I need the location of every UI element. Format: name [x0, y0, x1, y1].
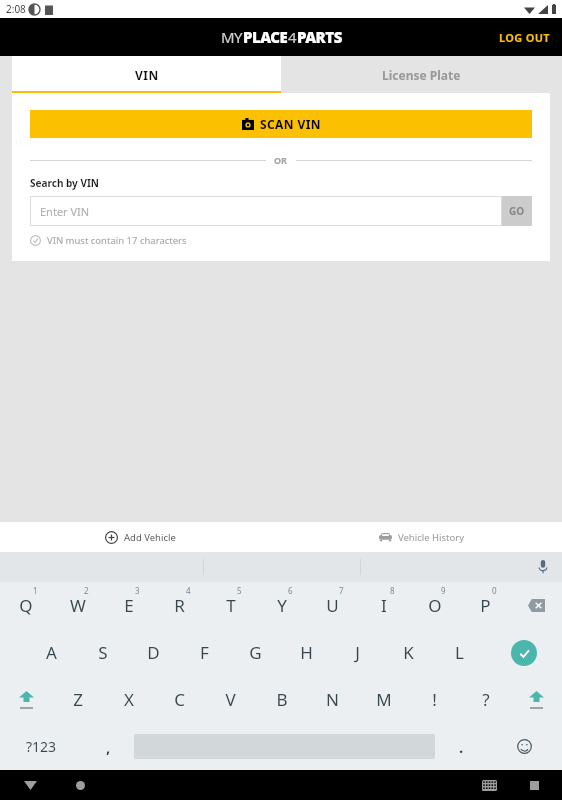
button[interactable]: LOG OUT: [487, 18, 562, 56]
button[interactable]: ?123: [0, 723, 82, 770]
button[interactable]: K: [383, 629, 434, 676]
staticText: S: [98, 641, 108, 664]
staticText: X: [124, 688, 134, 711]
button[interactable]: W: [52, 582, 103, 629]
button[interactable]: U: [307, 582, 358, 629]
staticText: B: [276, 688, 288, 711]
button[interactable]: Add Vehicle: [0, 522, 281, 552]
staticText: 2:08: [6, 2, 26, 16]
button[interactable]: License Plate: [281, 56, 562, 93]
staticText: A: [46, 641, 57, 664]
button[interactable]: ,: [82, 723, 134, 770]
staticText: Y: [277, 594, 287, 617]
button[interactable]: SCAN VIN: [30, 110, 532, 138]
staticText: 8: [390, 585, 395, 596]
staticText: 1: [33, 585, 38, 596]
staticText: F: [200, 641, 209, 664]
staticText: 4: [186, 585, 191, 596]
button[interactable]: M: [358, 676, 409, 723]
button[interactable]: R: [154, 582, 205, 629]
button[interactable]: Shift: [0, 676, 52, 723]
button[interactable]: H: [281, 629, 332, 676]
staticText: LOG OUT: [499, 30, 550, 45]
staticText: 4: [288, 27, 297, 47]
button[interactable]: Back: [20, 775, 40, 795]
staticText: L: [455, 641, 464, 664]
button[interactable]: V: [205, 676, 256, 723]
button[interactable]: Shift: [511, 676, 562, 723]
button[interactable]: GO: [502, 196, 532, 226]
button[interactable]: Home: [70, 775, 90, 795]
staticText: SCAN VIN: [260, 116, 321, 132]
staticText: Z: [73, 688, 83, 711]
staticText: V: [225, 688, 236, 711]
button[interactable]: L: [434, 629, 485, 676]
staticText: License Plate: [382, 67, 461, 83]
staticText: E: [124, 594, 134, 617]
staticText: 2: [84, 585, 89, 596]
button[interactable]: Recent apps: [524, 775, 544, 795]
button[interactable]: B: [256, 676, 307, 723]
staticText: PARTS: [297, 27, 342, 47]
button[interactable]: Q: [0, 582, 52, 629]
staticText: 6: [288, 585, 293, 596]
staticText: N: [326, 688, 339, 711]
button[interactable]: .: [435, 723, 487, 770]
staticText: C: [174, 688, 185, 711]
staticText: O: [428, 594, 442, 617]
button[interactable]: S: [77, 629, 128, 676]
staticText: J: [355, 641, 360, 664]
staticText: ?123: [26, 737, 57, 756]
button[interactable]: N: [307, 676, 358, 723]
button[interactable]: Vehicle History: [281, 522, 562, 552]
staticText: D: [147, 641, 160, 664]
staticText: PLACE: [243, 27, 288, 47]
staticText: I: [381, 594, 387, 617]
button[interactable]: T: [205, 582, 256, 629]
staticText: GO: [509, 204, 525, 218]
staticText: R: [174, 594, 185, 617]
staticText: 5: [237, 585, 242, 596]
staticText: Search by VIN: [30, 176, 99, 190]
button[interactable]: Backspace: [511, 582, 562, 629]
button[interactable]: Z: [52, 676, 103, 723]
staticText: ,: [106, 737, 111, 757]
button[interactable]: Y: [256, 582, 307, 629]
button[interactable]: Voice input: [534, 558, 552, 576]
staticText: W: [70, 594, 86, 617]
staticText: M: [376, 688, 392, 711]
button[interactable]: VIN: [12, 56, 281, 93]
button[interactable]: I: [358, 582, 409, 629]
staticText: Add Vehicle: [124, 531, 176, 544]
button[interactable]: J: [332, 629, 383, 676]
button[interactable]: E: [103, 582, 154, 629]
button[interactable]: D: [128, 629, 179, 676]
button[interactable]: !: [409, 676, 460, 723]
staticText: MY: [221, 27, 243, 47]
button[interactable]: Switch keyboard: [478, 774, 500, 796]
staticText: VIN must contain 17 characters: [47, 234, 187, 247]
button[interactable]: Enter VIN: [30, 196, 502, 226]
button[interactable]: O: [409, 582, 460, 629]
button[interactable]: A: [26, 629, 77, 676]
staticText: H: [300, 641, 313, 664]
staticText: VIN: [135, 67, 159, 83]
button[interactable]: C: [154, 676, 205, 723]
button[interactable]: F: [179, 629, 230, 676]
staticText: 9: [441, 585, 446, 596]
button[interactable]: P: [460, 582, 511, 629]
button[interactable]: Emoji: [487, 723, 562, 770]
staticText: !: [432, 688, 437, 711]
staticText: K: [403, 641, 414, 664]
button[interactable]: Enter: [485, 629, 562, 676]
button[interactable]: ?: [460, 676, 511, 723]
staticText: 3: [135, 585, 140, 596]
staticText: OR: [274, 154, 288, 166]
staticText: .: [459, 737, 464, 757]
staticText: ?: [482, 688, 490, 711]
staticText: Q: [19, 594, 33, 617]
button[interactable]: G: [230, 629, 281, 676]
staticText: Vehicle History: [398, 531, 465, 544]
button[interactable]: X: [103, 676, 154, 723]
